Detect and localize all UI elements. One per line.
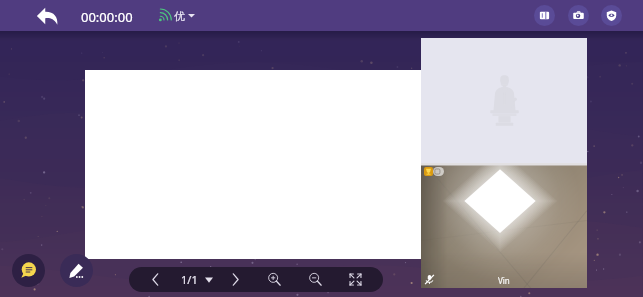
staticText: 优 [174, 9, 185, 23]
button[interactable]: Previous page [141, 267, 169, 292]
button[interactable]: Chat [12, 254, 45, 287]
button[interactable]: 1/1 [181, 267, 225, 292]
button[interactable]: Back [29, 0, 65, 31]
button[interactable]: Vin [421, 163, 587, 288]
button[interactable]: Layout [534, 5, 555, 26]
button[interactable]: Screenshot [568, 5, 589, 26]
button[interactable]: Zoom out [301, 267, 329, 292]
button[interactable]: Annotate [60, 254, 93, 287]
staticText: 00:00:00 [81, 8, 133, 26]
button[interactable]: Zoom in [260, 267, 288, 292]
button[interactable]: Next page [221, 267, 249, 292]
staticText: Vin [498, 275, 510, 286]
button[interactable]: 优 [158, 0, 195, 31]
button[interactable]: Security [601, 5, 622, 26]
staticText: 1/1 [181, 272, 198, 287]
button[interactable]: Full screen [341, 267, 369, 292]
